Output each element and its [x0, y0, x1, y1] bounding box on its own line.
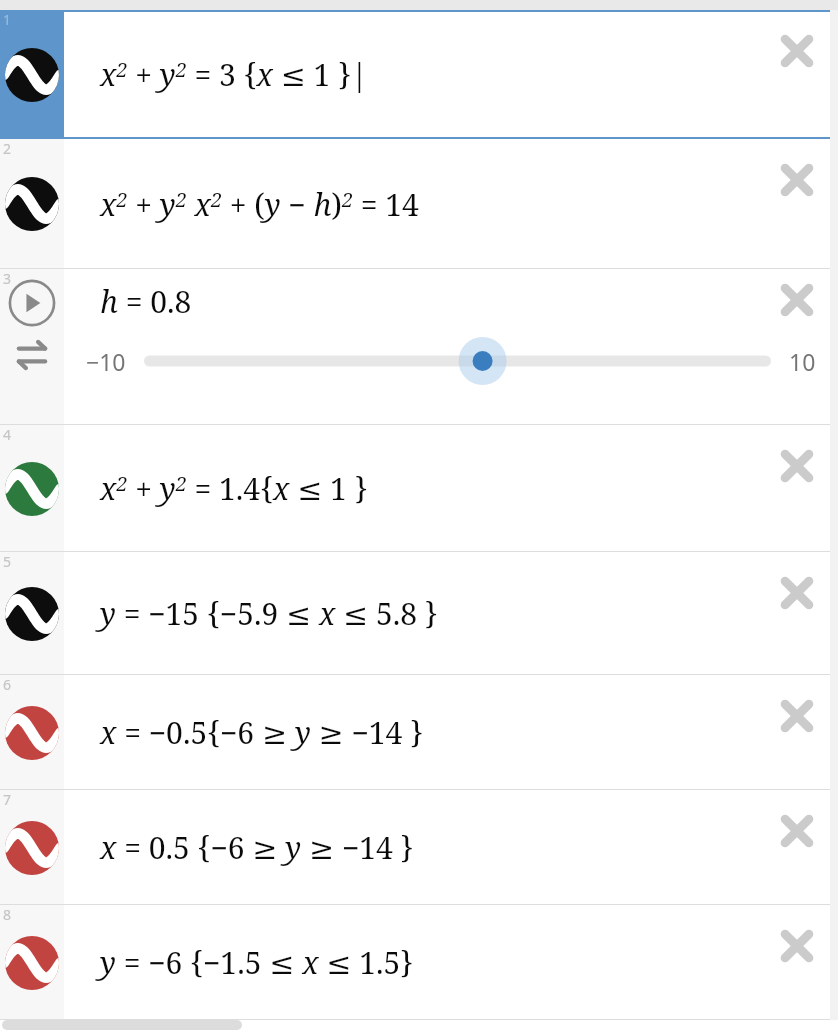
button[interactable]: 6: [0, 675, 64, 790]
other: Toggle graph 2: [5, 177, 59, 231]
staticText: 7: [3, 790, 12, 809]
staticText: 4: [3, 425, 12, 444]
button[interactable]: y = −15 {−5.9 ≤ x ≤ 5.8 }: [64, 552, 838, 675]
other: Toggle graph 8: [5, 936, 59, 990]
staticText: x2 + y2 = 3 {x ≤ 1 }|: [100, 54, 368, 95]
staticText: 1: [3, 10, 12, 29]
button[interactable]: x2 + y2 x2 + (y − h)2 = 14: [64, 139, 838, 269]
staticText: 6: [3, 675, 12, 694]
staticText: x = −0.5{−6 ≥ y ≥ −14 }: [100, 712, 424, 753]
button[interactable]: 1: [0, 10, 64, 139]
staticText: h = 0.8: [100, 281, 192, 322]
staticText: y = −15 {−5.9 ≤ x ≤ 5.8 }: [100, 593, 438, 634]
button[interactable]: Delete expression 3: [774, 277, 820, 323]
button[interactable]: Delete expression 1: [774, 28, 820, 74]
staticText: −10: [86, 346, 126, 377]
button[interactable]: Delete expression 5: [774, 570, 820, 616]
other: Toggle graph 1: [5, 48, 59, 102]
staticText: 2: [3, 139, 12, 158]
button[interactable]: Delete expression 2: [774, 157, 820, 203]
staticText: x2 + y2 = 1.4{x ≤ 1 }: [100, 468, 368, 509]
button[interactable]: Delete expression 8: [774, 923, 820, 969]
button[interactable]: −10: [64, 333, 838, 389]
staticText: 10: [789, 346, 816, 377]
button[interactable]: 7: [0, 790, 64, 905]
other: Toggle graph 4: [5, 462, 59, 516]
other: Toggle graph 5: [5, 587, 59, 641]
button[interactable]: 2: [0, 139, 64, 269]
staticText: y = −6 {−1.5 ≤ x ≤ 1.5}: [100, 942, 414, 983]
button[interactable]: Delete expression 4: [774, 443, 820, 489]
staticText: x2 + y2 x2 + (y − h)2 = 14: [100, 184, 419, 225]
button[interactable]: 8: [0, 905, 64, 1020]
button[interactable]: Delete expression 6: [774, 693, 820, 739]
button[interactable]: 3: [0, 269, 64, 425]
other: Toggle graph 7: [5, 821, 59, 875]
button[interactable]: x = −0.5{−6 ≥ y ≥ −14 }: [64, 675, 838, 790]
staticText: 3: [3, 269, 12, 288]
button[interactable]: Play animation: [8, 279, 56, 327]
button[interactable]: x2 + y2 = 3 {x ≤ 1 }|: [64, 10, 838, 139]
button[interactable]: x = 0.5 {−6 ≥ y ≥ −14 }: [64, 790, 838, 905]
staticText: 5: [3, 552, 12, 571]
staticText: 8: [3, 905, 12, 924]
button[interactable]: y = −6 {−1.5 ≤ x ≤ 1.5}: [64, 905, 838, 1020]
button[interactable]: Delete expression 7: [774, 808, 820, 854]
button[interactable]: 5: [0, 552, 64, 675]
staticText: x = 0.5 {−6 ≥ y ≥ −14 }: [100, 827, 414, 868]
button[interactable]: x2 + y2 = 1.4{x ≤ 1 }: [64, 425, 838, 552]
other: Toggle graph 6: [5, 706, 59, 760]
button[interactable]: Change animation direction: [12, 335, 52, 375]
button[interactable]: 4: [0, 425, 64, 552]
